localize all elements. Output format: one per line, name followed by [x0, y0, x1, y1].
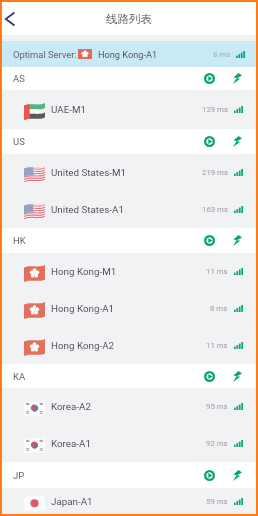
staticText: United States-A1 — [51, 204, 124, 215]
button[interactable]: United States-A1 — [2, 191, 256, 228]
staticText: 11 ms — [206, 267, 228, 276]
button[interactable]: Korea-A1 — [2, 425, 256, 462]
button[interactable]: Speed test — [230, 369, 245, 384]
button[interactable]: Back — [0, 8, 21, 30]
button[interactable]: Hong Kong-A1 — [2, 290, 256, 327]
staticText: Japan-A1 — [51, 496, 93, 507]
button[interactable]: Connect — [202, 233, 217, 248]
button[interactable]: Speed test — [230, 233, 245, 248]
staticText: Hong Kong-M1 — [51, 266, 117, 277]
button[interactable]: US — [2, 129, 256, 154]
staticText: Korea-A2 — [51, 401, 91, 412]
staticText: 59 ms — [206, 497, 228, 506]
button[interactable]: Optimal Server: — [2, 41, 256, 67]
staticText: 线路列表 — [106, 12, 152, 26]
button[interactable]: Korea-A2 — [2, 388, 256, 425]
button[interactable]: Connect — [202, 134, 217, 149]
button[interactable]: AS — [2, 67, 256, 90]
button[interactable]: United States-M1 — [2, 154, 256, 191]
button[interactable]: Speed test — [230, 71, 245, 86]
staticText: Korea-A1 — [51, 438, 91, 449]
staticText: AS — [13, 73, 25, 84]
staticText: US — [13, 136, 25, 147]
staticText: Optimal Server: — [13, 49, 77, 60]
staticText: HK — [13, 235, 26, 246]
staticText: 219 ms — [202, 168, 228, 177]
staticText: 11 ms — [206, 341, 228, 350]
staticText: 92 ms — [206, 439, 228, 448]
staticText: 8 ms — [213, 50, 231, 59]
staticText: 8 ms — [210, 304, 228, 313]
staticText: JP — [13, 470, 25, 481]
button[interactable]: UAE-M1 — [2, 90, 256, 129]
button[interactable]: Speed test — [230, 134, 245, 149]
button[interactable]: HK — [2, 228, 256, 253]
staticText: Hong Kong-A1 — [51, 303, 115, 314]
staticText: Hong Kong-A1 — [98, 49, 158, 60]
button[interactable]: JP — [2, 462, 256, 488]
button[interactable]: Connect — [202, 71, 217, 86]
staticText: 129 ms — [202, 105, 228, 114]
staticText: United States-M1 — [51, 167, 127, 178]
button[interactable]: Hong Kong-M1 — [2, 253, 256, 290]
button[interactable]: Hong Kong-A2 — [2, 327, 256, 364]
staticText: UAE-M1 — [51, 104, 86, 115]
button[interactable]: KA — [2, 364, 256, 388]
staticText: 163 ms — [202, 205, 228, 214]
button[interactable]: Japan-A1 — [2, 488, 256, 514]
button[interactable]: Connect — [202, 369, 217, 384]
staticText: 95 ms — [206, 402, 228, 411]
staticText: Hong Kong-A2 — [51, 340, 115, 351]
staticText: KA — [13, 371, 26, 382]
button[interactable]: Speed test — [230, 468, 245, 483]
button[interactable]: Connect — [202, 468, 217, 483]
